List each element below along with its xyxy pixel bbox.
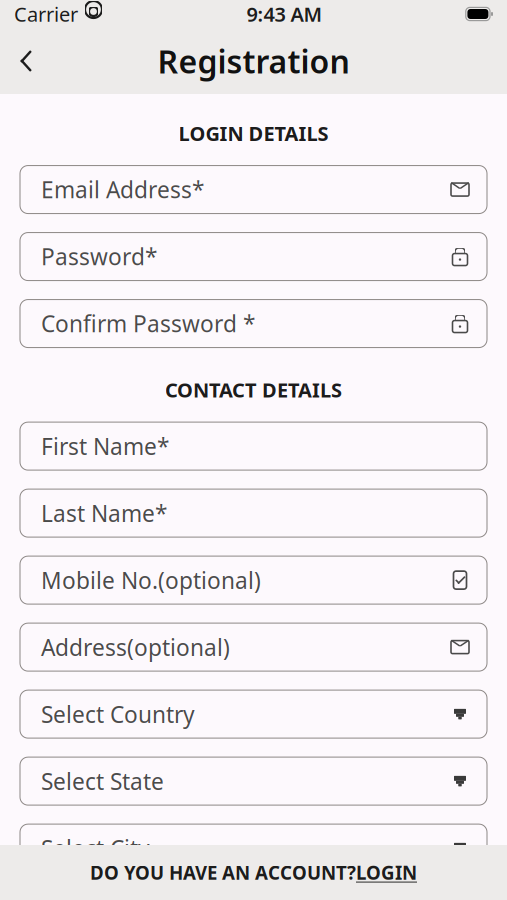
staticText: DO YOU HAVE AN ACCOUNT? bbox=[90, 860, 356, 885]
staticText: Carrier bbox=[14, 1, 78, 27]
staticText: Select Country bbox=[41, 699, 195, 729]
button[interactable]: Mobile No.(optional) bbox=[20, 556, 487, 604]
staticText: 9:43 AM bbox=[246, 1, 322, 27]
button[interactable]: First Name* bbox=[20, 422, 487, 470]
staticText: Mobile No.(optional) bbox=[41, 565, 261, 595]
staticText: Select City bbox=[41, 833, 150, 863]
button[interactable]: Email Address* bbox=[20, 166, 487, 214]
staticText: LOGIN DETAILS bbox=[178, 120, 328, 147]
button[interactable]: DO YOU HAVE AN ACCOUNT? bbox=[0, 845, 507, 900]
staticText: LOGIN bbox=[356, 860, 417, 885]
button[interactable]: Address(optional) bbox=[20, 623, 487, 671]
staticText: Select State bbox=[41, 766, 164, 796]
staticText: Email Address* bbox=[41, 174, 204, 205]
button[interactable]: Select State bbox=[20, 757, 487, 805]
staticText: Password* bbox=[41, 241, 157, 272]
button[interactable]: Back bbox=[0, 36, 52, 86]
button[interactable]: Select City bbox=[20, 824, 487, 872]
button[interactable]: Last Name* bbox=[20, 489, 487, 537]
staticText: Address(optional) bbox=[41, 632, 230, 662]
staticText: First Name* bbox=[41, 431, 169, 461]
button[interactable]: Confirm Password * bbox=[20, 300, 487, 348]
staticText: CONTACT DETAILS bbox=[165, 377, 342, 403]
staticText: Confirm Password * bbox=[41, 308, 255, 339]
button[interactable]: Select Country bbox=[20, 690, 487, 738]
staticText: Registration bbox=[157, 40, 349, 82]
staticText: Last Name* bbox=[41, 498, 167, 528]
button[interactable]: Password* bbox=[20, 233, 487, 281]
